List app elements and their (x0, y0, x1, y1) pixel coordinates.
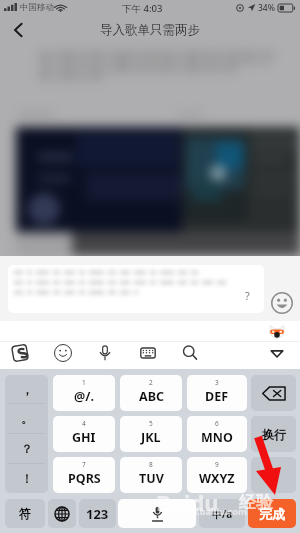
staticText: 4 (82, 419, 86, 428)
staticText: 34% (258, 2, 275, 14)
button[interactable]: 符 (5, 499, 45, 528)
staticText: 中国移动 (20, 2, 54, 13)
button[interactable]: 完成 (248, 499, 296, 528)
button[interactable]: Back (6, 18, 30, 42)
button[interactable]: Emoji (54, 344, 72, 362)
button[interactable]: 7 (53, 457, 115, 493)
staticText: 。 (21, 411, 33, 426)
button[interactable]: 换行 (251, 416, 296, 452)
staticText: @/. (74, 388, 94, 405)
button[interactable]: 5 (120, 416, 182, 452)
staticText: 0 (270, 466, 278, 484)
staticText: TUV (139, 470, 164, 487)
button[interactable]: Hide keyboard (268, 344, 286, 362)
button[interactable]: Voice input (96, 344, 114, 362)
staticText: ， (21, 382, 33, 397)
button[interactable]: 3 (187, 375, 247, 411)
staticText: DEF (205, 388, 229, 405)
button[interactable]: 4 (53, 416, 115, 452)
button[interactable] (48, 499, 76, 528)
button[interactable]: ， (5, 375, 48, 493)
staticText: 1 (82, 378, 86, 387)
button[interactable]: 6 (187, 416, 247, 452)
staticText: 6 (215, 419, 219, 428)
staticText: 5 (149, 419, 153, 428)
staticText: 换行 (262, 427, 286, 442)
button[interactable]: 8 (120, 457, 182, 493)
staticText: ？ (21, 441, 33, 456)
staticText: JKL (141, 429, 161, 446)
staticText: ABC (139, 388, 164, 405)
staticText: 8 (149, 460, 153, 469)
staticText: 9 (215, 460, 219, 469)
staticText: jingyan.baidu.com (164, 505, 247, 517)
staticText: 导入歌单只需两步 (100, 22, 200, 38)
staticText: ！ (21, 471, 33, 486)
button[interactable] (251, 375, 296, 411)
button[interactable]: 1 (53, 375, 115, 411)
staticText: WXYZ (199, 470, 235, 487)
staticText: PQRS (68, 470, 101, 487)
button[interactable]: Emoji (271, 292, 293, 314)
staticText: 7 (82, 460, 86, 469)
button[interactable]: Keyboard layout (139, 344, 157, 362)
staticText: ? (245, 288, 250, 303)
staticText: MNO (201, 429, 233, 446)
button[interactable]: 0 (251, 457, 296, 493)
staticText: 经验 (239, 492, 273, 513)
button[interactable]: 123 (79, 499, 116, 528)
staticText: 中/a (212, 507, 233, 521)
button[interactable] (118, 499, 196, 528)
button[interactable]: 2 (120, 375, 182, 411)
button[interactable]: ? (8, 265, 264, 313)
staticText: 完成 (259, 506, 285, 522)
button[interactable]: 9 (187, 457, 247, 493)
staticText: GHI (72, 429, 96, 446)
staticText: 下午 4:03 (122, 2, 163, 15)
staticText: 123 (86, 505, 109, 523)
button[interactable]: Sogou input method (11, 344, 29, 362)
button[interactable]: 中/a (199, 499, 245, 528)
staticText: 符 (19, 506, 31, 521)
staticText: Baidu (156, 487, 219, 517)
staticText: 3 (215, 378, 219, 387)
staticText: 2 (149, 378, 153, 387)
button[interactable]: Search (181, 344, 199, 362)
